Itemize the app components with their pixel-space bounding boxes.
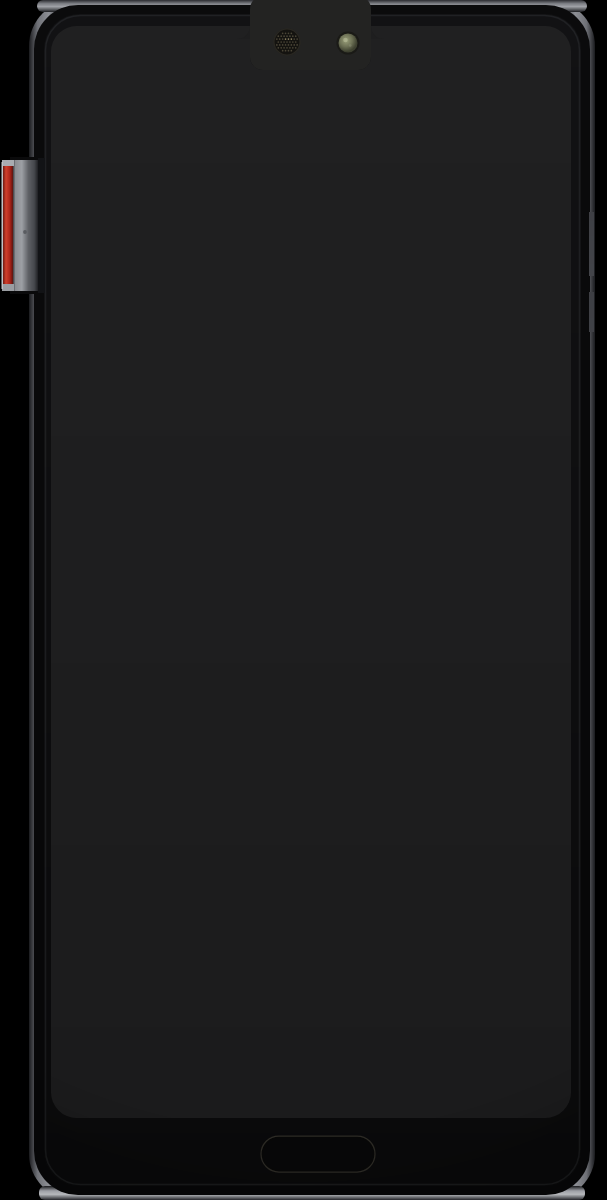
other: Smartphone device with screen off xyxy=(0,0,607,1200)
